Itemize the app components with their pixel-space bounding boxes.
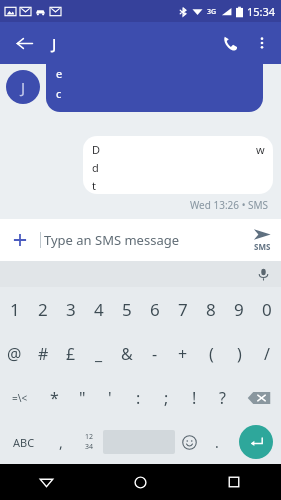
button[interactable]: ' xyxy=(96,376,124,420)
button[interactable]: Send SMS xyxy=(251,227,273,253)
staticText: £ xyxy=(66,343,76,365)
staticText: 3G xyxy=(207,7,217,17)
staticText: SMS xyxy=(254,241,271,252)
staticText: 3 xyxy=(66,298,76,321)
button[interactable]: 5 xyxy=(113,287,141,332)
button[interactable]: Back xyxy=(8,27,40,59)
staticText: ? xyxy=(219,387,226,409)
staticText: 1 xyxy=(10,298,20,321)
staticText: + xyxy=(178,343,188,365)
button[interactable]: ? xyxy=(208,376,236,420)
staticText: 5 xyxy=(122,298,132,321)
button[interactable]: =\< xyxy=(0,376,40,420)
staticText: - xyxy=(152,343,158,365)
staticText: ) xyxy=(237,343,242,365)
button[interactable]: " xyxy=(68,376,96,420)
button[interactable]: D xyxy=(83,136,273,194)
button[interactable]: Numbers xyxy=(75,420,103,464)
button[interactable]: Backspace xyxy=(236,376,281,420)
button[interactable]: 9 xyxy=(225,287,253,332)
button[interactable]: Emoji xyxy=(175,420,203,464)
button[interactable]: Voice input xyxy=(251,262,275,286)
staticText: t xyxy=(92,178,96,193)
button[interactable]: ; xyxy=(152,376,180,420)
staticText: D xyxy=(92,142,101,157)
button[interactable]: # xyxy=(29,332,57,376)
button[interactable]: . xyxy=(203,420,231,464)
staticText: # xyxy=(38,343,49,365)
button[interactable]: , xyxy=(47,420,75,464)
staticText: 4 xyxy=(94,298,104,321)
button[interactable]: - xyxy=(141,332,169,376)
button[interactable]: 2 xyxy=(29,287,57,332)
button[interactable]: 7 xyxy=(169,287,197,332)
staticText: c xyxy=(56,86,62,101)
staticText: ABC xyxy=(13,435,35,450)
staticText: J xyxy=(21,77,26,97)
button[interactable]: 8 xyxy=(197,287,225,332)
button[interactable]: e xyxy=(46,64,263,112)
button[interactable]: ! xyxy=(180,376,208,420)
staticText: _ xyxy=(95,343,103,365)
button[interactable]: : xyxy=(124,376,152,420)
button[interactable]: 3 xyxy=(57,287,85,332)
staticText: 8 xyxy=(206,298,216,321)
staticText: ' xyxy=(108,387,112,409)
button[interactable]: 4 xyxy=(85,287,113,332)
staticText: 15:34 xyxy=(247,4,276,19)
button[interactable]: 0 xyxy=(253,287,281,332)
staticText: 12 xyxy=(85,432,94,442)
button[interactable]: / xyxy=(253,332,281,376)
staticText: : xyxy=(136,387,141,409)
staticText: , xyxy=(59,433,63,452)
button[interactable]: Enter xyxy=(239,425,273,459)
button[interactable]: & xyxy=(113,332,141,376)
staticText: & xyxy=(121,343,133,365)
staticText: 7 xyxy=(178,298,188,321)
staticText: e xyxy=(56,66,63,81)
staticText: @ xyxy=(7,343,22,365)
button[interactable]: * xyxy=(40,376,68,420)
staticText: ; xyxy=(164,387,169,409)
staticText: w xyxy=(256,142,265,157)
staticText: * xyxy=(50,387,59,409)
staticText: 0 xyxy=(262,298,272,321)
button[interactable]: Recents xyxy=(187,464,281,500)
button[interactable]: 6 xyxy=(141,287,169,332)
staticText: " xyxy=(79,387,86,409)
button[interactable]: ABC xyxy=(0,420,47,464)
staticText: 34 xyxy=(85,442,94,452)
button[interactable]: + xyxy=(169,332,197,376)
button[interactable]: Attach xyxy=(4,224,36,256)
staticText: 2 xyxy=(38,298,48,321)
button[interactable]: ( xyxy=(197,332,225,376)
staticText: . xyxy=(215,433,219,452)
button[interactable]: £ xyxy=(57,332,85,376)
staticText: / xyxy=(264,343,270,365)
staticText: d xyxy=(92,160,99,175)
button[interactable]: More options xyxy=(247,28,277,58)
button[interactable]: Call xyxy=(213,26,247,60)
staticText: =\< xyxy=(12,391,28,405)
staticText: ! xyxy=(192,387,197,409)
staticText: 6 xyxy=(150,298,160,321)
button[interactable]: Back xyxy=(0,464,93,500)
staticText: Type an SMS message xyxy=(44,231,180,249)
staticText: 9 xyxy=(234,298,244,321)
staticText: J xyxy=(52,33,57,53)
button[interactable]: 1 xyxy=(0,287,29,332)
button[interactable]: ) xyxy=(225,332,253,376)
button[interactable]: Home xyxy=(93,464,187,500)
button[interactable]: @ xyxy=(0,332,29,376)
staticText: ( xyxy=(209,343,214,365)
staticText: Wed 13:26 • SMS xyxy=(190,198,269,212)
button[interactable]: _ xyxy=(85,332,113,376)
